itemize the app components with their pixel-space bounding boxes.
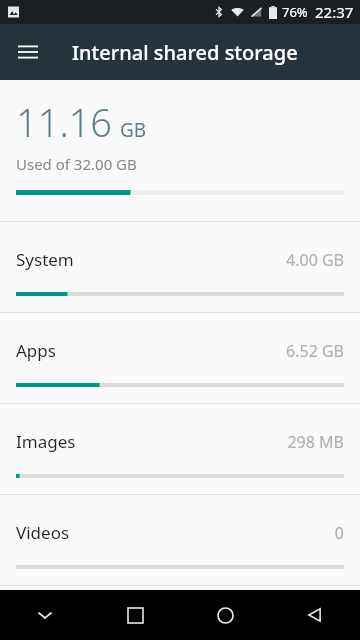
- staticText: Apps: [16, 339, 56, 362]
- staticText: 22:37: [315, 2, 354, 22]
- staticText: GB: [120, 117, 147, 143]
- button[interactable]: Videos: [0, 495, 360, 585]
- staticText: Internal shared storage: [72, 39, 298, 66]
- staticText: Videos: [16, 521, 70, 544]
- button[interactable]: Images: [0, 404, 360, 494]
- staticText: Used of 32.00 GB: [16, 154, 137, 174]
- button[interactable]: Home: [180, 590, 270, 640]
- staticText: 6.52 GB: [286, 340, 344, 362]
- staticText: 0: [334, 522, 344, 544]
- staticText: System: [16, 248, 74, 271]
- staticText: 11.16: [16, 96, 113, 148]
- button[interactable]: Recent apps: [90, 590, 180, 640]
- staticText: 298 MB: [287, 431, 344, 453]
- button[interactable]: Apps: [0, 313, 360, 403]
- button[interactable]: System: [0, 222, 360, 312]
- button[interactable]: Hide: [0, 590, 90, 640]
- staticText: 4.00 GB: [286, 249, 344, 271]
- button[interactable]: Open navigation menu: [0, 24, 56, 80]
- staticText: 76%: [282, 3, 308, 21]
- staticText: Images: [16, 430, 76, 453]
- button[interactable]: Back: [270, 590, 360, 640]
